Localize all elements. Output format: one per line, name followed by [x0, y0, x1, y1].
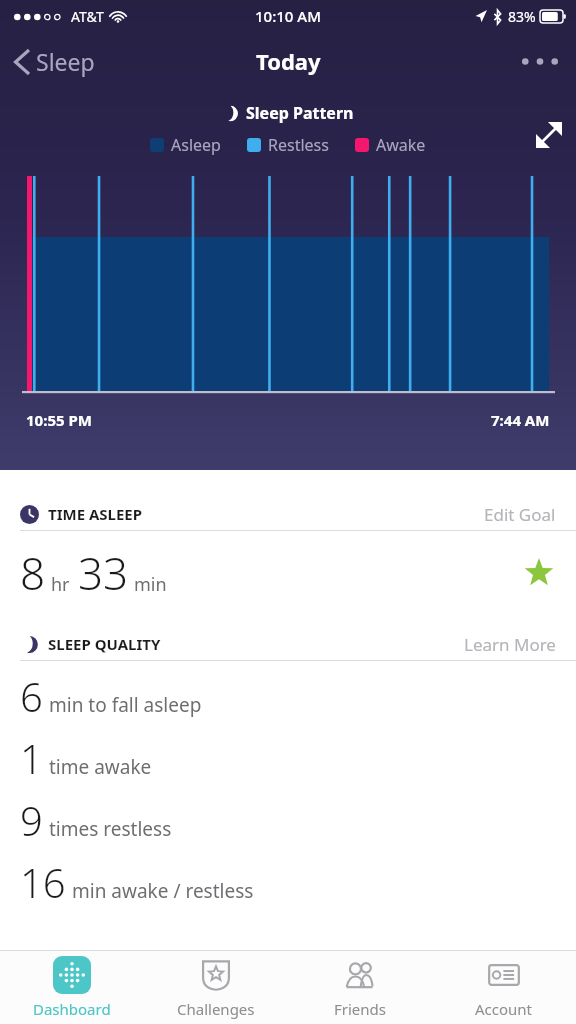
- staticText: Sleep: [36, 46, 95, 77]
- button[interactable]: 16: [0, 851, 576, 913]
- button[interactable]: Dashboard: [0, 951, 144, 1024]
- staticText: times restless: [49, 816, 172, 842]
- staticText: 9: [20, 793, 43, 847]
- button[interactable]: SLEEP QUALITY: [0, 628, 576, 661]
- staticText: Edit Goal: [484, 503, 556, 526]
- staticText: 6: [20, 669, 43, 723]
- staticText: Friends: [334, 999, 386, 1019]
- button[interactable]: Sleep: [0, 38, 109, 85]
- staticText: TIME ASLEEP: [48, 504, 143, 524]
- staticText: 83%: [508, 7, 536, 26]
- staticText: min to fall asleep: [49, 692, 202, 718]
- button[interactable]: 6: [0, 665, 576, 727]
- staticText: hr: [51, 572, 70, 597]
- button[interactable]: 1: [0, 727, 576, 789]
- staticText: Sleep Pattern: [246, 102, 354, 124]
- staticText: 16: [20, 855, 66, 909]
- staticText: 8: [20, 543, 46, 603]
- staticText: 10:55 PM: [26, 410, 92, 430]
- staticText: Asleep: [171, 134, 221, 156]
- button[interactable]: 9: [0, 789, 576, 851]
- staticText: min: [134, 572, 167, 597]
- staticText: 10:10 AM: [255, 6, 321, 26]
- button[interactable]: Expand chart: [522, 108, 576, 162]
- staticText: 1: [20, 731, 43, 785]
- staticText: Restless: [268, 134, 329, 156]
- staticText: AT&T: [71, 7, 104, 26]
- staticText: Learn More: [464, 633, 556, 656]
- button[interactable]: Challenges: [144, 951, 288, 1024]
- button[interactable]: Account: [432, 951, 576, 1024]
- button[interactable]: TIME ASLEEP: [0, 498, 576, 531]
- staticText: Awake: [376, 134, 426, 156]
- staticText: SLEEP QUALITY: [48, 634, 161, 654]
- staticText: Today: [256, 46, 321, 76]
- staticText: 7:44 AM: [491, 410, 550, 430]
- staticText: min awake / restless: [72, 878, 254, 904]
- staticText: Dashboard: [33, 999, 111, 1019]
- button[interactable]: Friends: [288, 951, 432, 1024]
- staticText: Account: [475, 999, 533, 1019]
- staticText: time awake: [49, 754, 152, 780]
- button[interactable]: More options: [504, 44, 576, 79]
- staticText: 33: [78, 543, 129, 603]
- staticText: Challenges: [177, 999, 255, 1019]
